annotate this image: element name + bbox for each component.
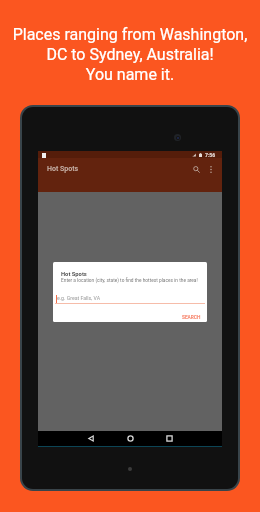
staticText: Enter a location (city, state) to find t… xyxy=(61,278,198,284)
staticText: Places ranging from Washington, DC to Sy… xyxy=(0,25,260,84)
button[interactable]: More options xyxy=(206,158,216,180)
staticText: Hot Spots xyxy=(47,165,79,173)
button[interactable]: SEARCH xyxy=(178,312,205,322)
staticText: Hot Spots xyxy=(61,271,87,278)
button[interactable]: Recents xyxy=(156,431,182,445)
staticText: e.g. Great Falls, VA xyxy=(57,295,101,301)
button[interactable]: Search xyxy=(189,158,203,180)
staticText: SEARCH xyxy=(182,315,201,321)
staticText: 7:56 xyxy=(205,152,216,158)
button[interactable]: Home xyxy=(117,431,143,445)
button[interactable]: Back xyxy=(78,431,104,445)
